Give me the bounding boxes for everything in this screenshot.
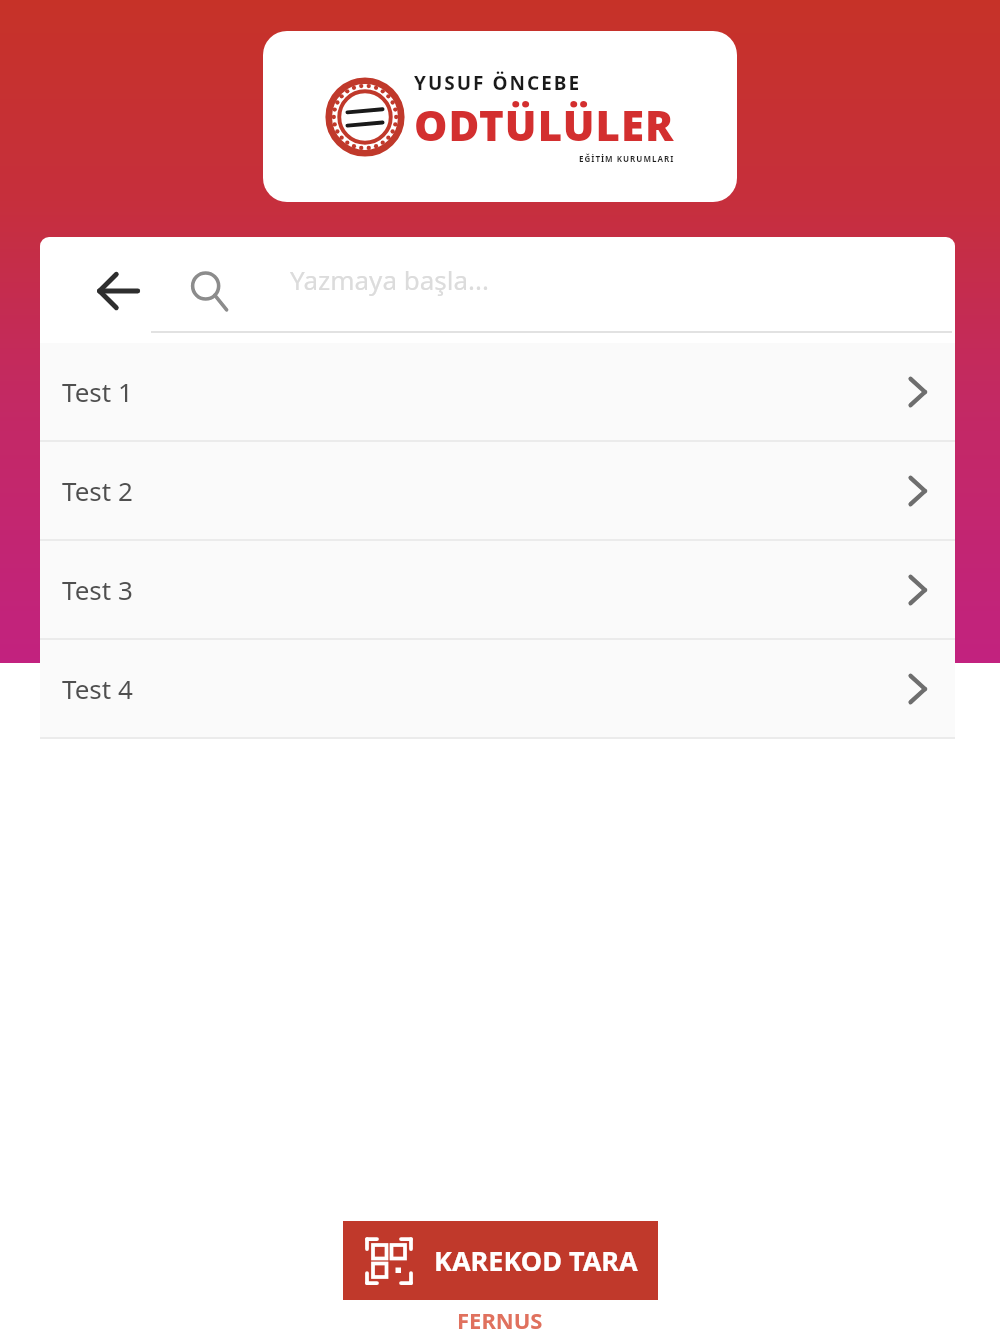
button[interactable]: Test 1 xyxy=(40,343,955,440)
staticText: ODTÜLÜLER xyxy=(414,96,675,153)
staticText: KAREKOD TARA xyxy=(434,1242,638,1279)
staticText: FERNUS xyxy=(457,1305,543,1334)
other: Scan QR code xyxy=(364,1236,414,1286)
staticText: Test 4 xyxy=(62,671,133,706)
staticText: Yazmaya başla... xyxy=(290,262,489,297)
button[interactable]: Scan QR code xyxy=(343,1221,658,1300)
button[interactable]: Back xyxy=(87,260,149,322)
button[interactable]: YUSUF ÖNCEBE xyxy=(263,31,737,202)
button[interactable]: Test 3 xyxy=(40,541,955,638)
staticText: Test 3 xyxy=(62,572,133,607)
staticText: EĞİTİM KURUMLARI xyxy=(579,153,675,164)
staticText: Test 2 xyxy=(62,473,133,508)
staticText: YUSUF ÖNCEBE xyxy=(414,70,582,96)
button[interactable]: Test 2 xyxy=(40,442,955,539)
button[interactable]: Test 4 xyxy=(40,640,955,737)
staticText: Test 1 xyxy=(62,374,133,409)
